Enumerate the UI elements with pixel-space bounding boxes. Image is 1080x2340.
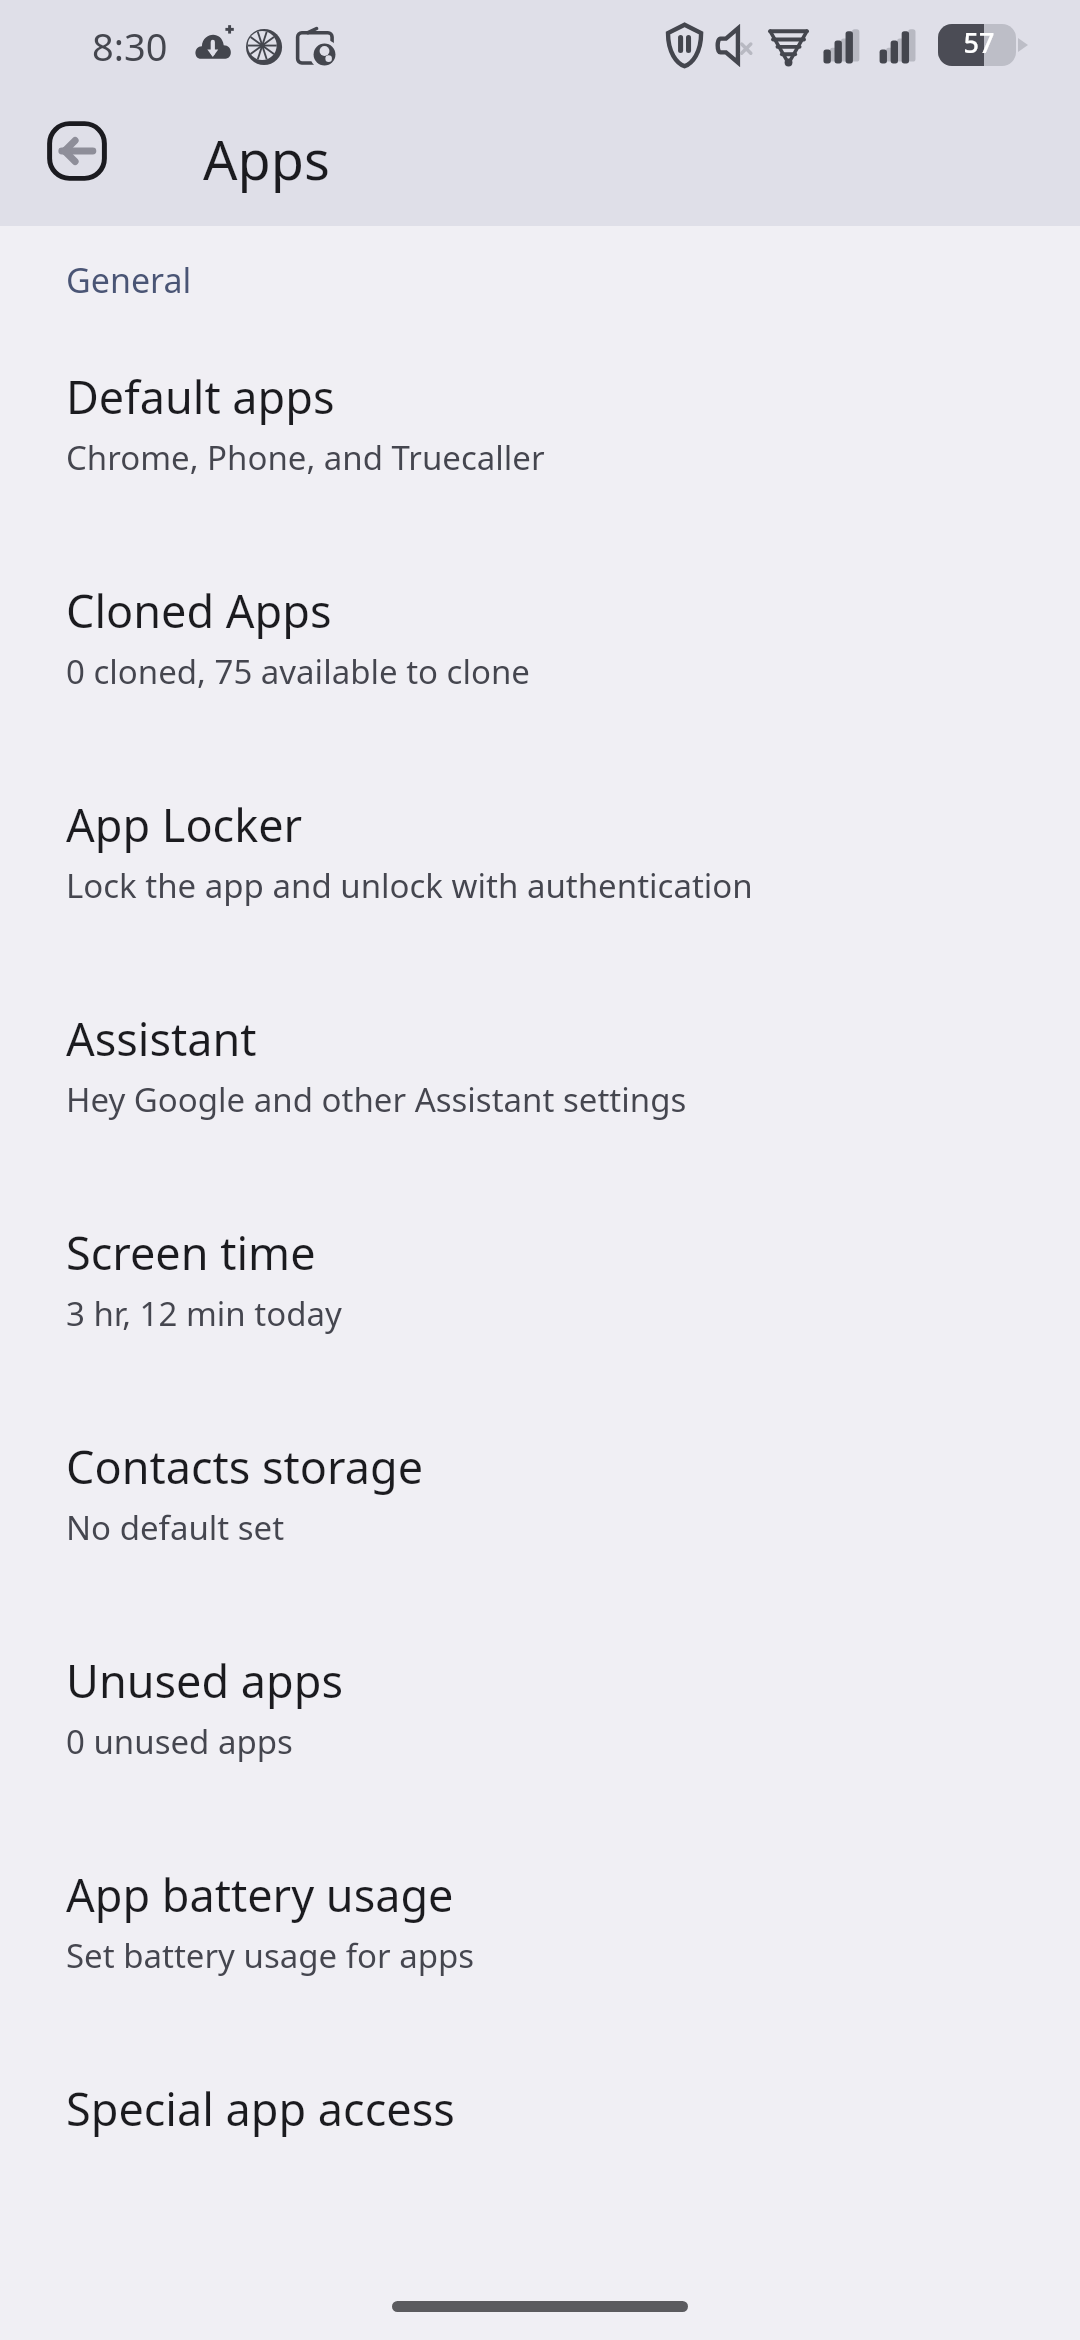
staticText: Screen time bbox=[66, 1222, 316, 1283]
button[interactable]: Special app access bbox=[0, 2046, 1080, 2196]
staticText: Contacts storage bbox=[66, 1436, 424, 1497]
staticText: 0 cloned, 75 available to clone bbox=[66, 649, 530, 694]
staticText: 57 bbox=[942, 24, 1016, 66]
staticText: Assistant bbox=[66, 1008, 257, 1069]
staticText: App battery usage bbox=[66, 1864, 454, 1925]
button[interactable]: Assistant bbox=[0, 976, 1080, 1190]
staticText: Special app access bbox=[66, 2078, 455, 2139]
staticText: Unused apps bbox=[66, 1650, 343, 1711]
staticText: Default apps bbox=[66, 366, 335, 427]
staticText: General bbox=[66, 257, 192, 303]
button[interactable]: Back bbox=[44, 118, 110, 184]
staticText: 8:30 bbox=[92, 20, 168, 72]
staticText: No default set bbox=[66, 1505, 285, 1550]
button[interactable]: Default apps bbox=[0, 334, 1080, 548]
staticText: Cloned Apps bbox=[66, 580, 332, 641]
staticText: Chrome, Phone, and Truecaller bbox=[66, 435, 545, 480]
button[interactable]: Cloned Apps bbox=[0, 548, 1080, 762]
staticText: 3 hr, 12 min today bbox=[66, 1291, 342, 1336]
staticText: Lock the app and unlock with authenticat… bbox=[66, 863, 753, 908]
staticText: Apps bbox=[203, 122, 330, 196]
staticText: Set battery usage for apps bbox=[66, 1933, 475, 1978]
button[interactable]: Contacts storage bbox=[0, 1404, 1080, 1618]
button[interactable]: App battery usage bbox=[0, 1832, 1080, 2046]
button[interactable]: App Locker bbox=[0, 762, 1080, 976]
staticText: Hey Google and other Assistant settings bbox=[66, 1077, 687, 1122]
button[interactable]: Screen time bbox=[0, 1190, 1080, 1404]
button[interactable]: Unused apps bbox=[0, 1618, 1080, 1832]
staticText: App Locker bbox=[66, 794, 303, 855]
staticText: 0 unused apps bbox=[66, 1719, 293, 1764]
